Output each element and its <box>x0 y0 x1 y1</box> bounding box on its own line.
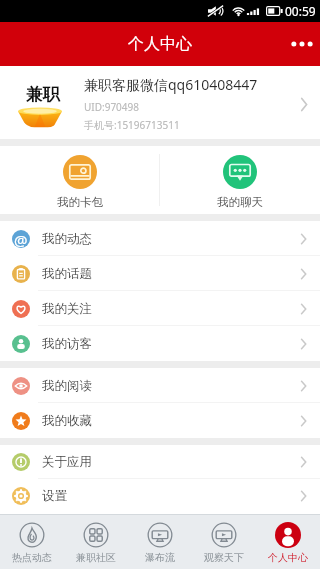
staticText: 关于应用 <box>42 454 92 470</box>
staticText: 我的动态 <box>42 231 92 247</box>
staticText: 兼职客服微信qq610408447 <box>84 75 258 94</box>
staticText: 设置 <box>42 488 67 504</box>
button[interactable]: 我的话题 <box>0 256 320 291</box>
button[interactable]: 瀑布流 <box>128 515 192 569</box>
button[interactable]: 个人中心 <box>256 515 320 569</box>
button[interactable]: 兼职 <box>0 66 320 139</box>
button[interactable]: 我的收藏 <box>0 403 320 438</box>
button[interactable]: 热点动态 <box>0 515 64 569</box>
button[interactable]: 我的访客 <box>0 326 320 361</box>
button[interactable]: 我的阅读 <box>0 368 320 403</box>
staticText: 我的收藏 <box>42 413 92 429</box>
staticText: 我的卡包 <box>57 195 103 209</box>
staticText: 手机号:15196713511 <box>84 118 180 132</box>
staticText: 个人中心 <box>128 34 192 54</box>
staticText: UID:970498 <box>84 100 139 114</box>
staticText: 观察天下 <box>204 551 244 564</box>
button[interactable]: 我的关注 <box>0 291 320 326</box>
staticText: 我的话题 <box>42 266 92 282</box>
button[interactable]: 我的卡包 <box>0 146 159 214</box>
staticText: 我的关注 <box>42 301 92 317</box>
button[interactable]: @ <box>0 221 320 256</box>
staticText: 我的访客 <box>42 336 92 352</box>
staticText: 我的阅读 <box>42 378 92 394</box>
button[interactable]: More options <box>284 24 320 64</box>
button[interactable]: 关于应用 <box>0 445 320 479</box>
staticText: @ <box>14 230 28 248</box>
button[interactable]: 兼职社区 <box>64 515 128 569</box>
button[interactable]: 我的聊天 <box>160 146 320 214</box>
staticText: 瀑布流 <box>145 551 175 564</box>
button[interactable]: 设置 <box>0 479 320 513</box>
staticText: 兼职 <box>26 84 60 105</box>
staticText: 个人中心 <box>268 551 308 564</box>
button[interactable]: 观察天下 <box>192 515 256 569</box>
staticText: 我的聊天 <box>217 195 263 209</box>
staticText: 兼职社区 <box>76 551 116 564</box>
staticText: 热点动态 <box>12 551 52 564</box>
staticText: 00:59 <box>285 3 316 19</box>
